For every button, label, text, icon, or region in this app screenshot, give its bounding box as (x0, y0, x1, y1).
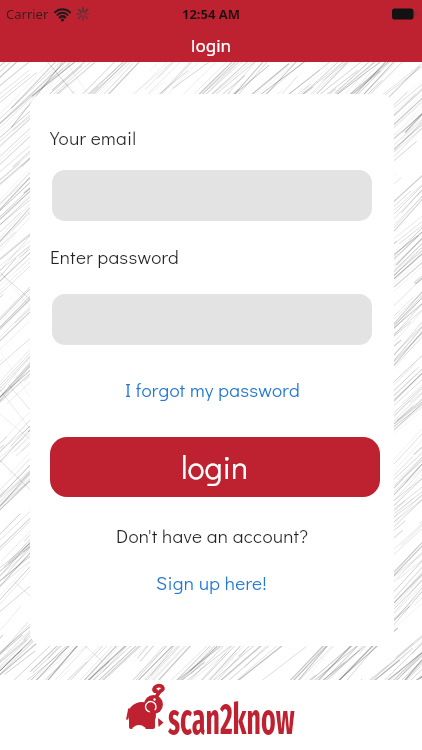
staticText: login (181, 446, 249, 488)
staticText: Sign up here! (156, 570, 268, 595)
button[interactable]: I forgot my password (125, 377, 300, 402)
staticText: Don't have an account? (116, 523, 309, 548)
staticText: 12:54 AM (182, 5, 241, 23)
staticText: Carrier (6, 5, 49, 23)
button[interactable]: Sign up here! (156, 570, 268, 595)
staticText: Enter password (50, 244, 180, 269)
staticText: I forgot my password (125, 377, 300, 402)
staticText: login (191, 34, 232, 57)
staticText: Your email (50, 125, 137, 150)
button[interactable]: login (50, 437, 380, 497)
